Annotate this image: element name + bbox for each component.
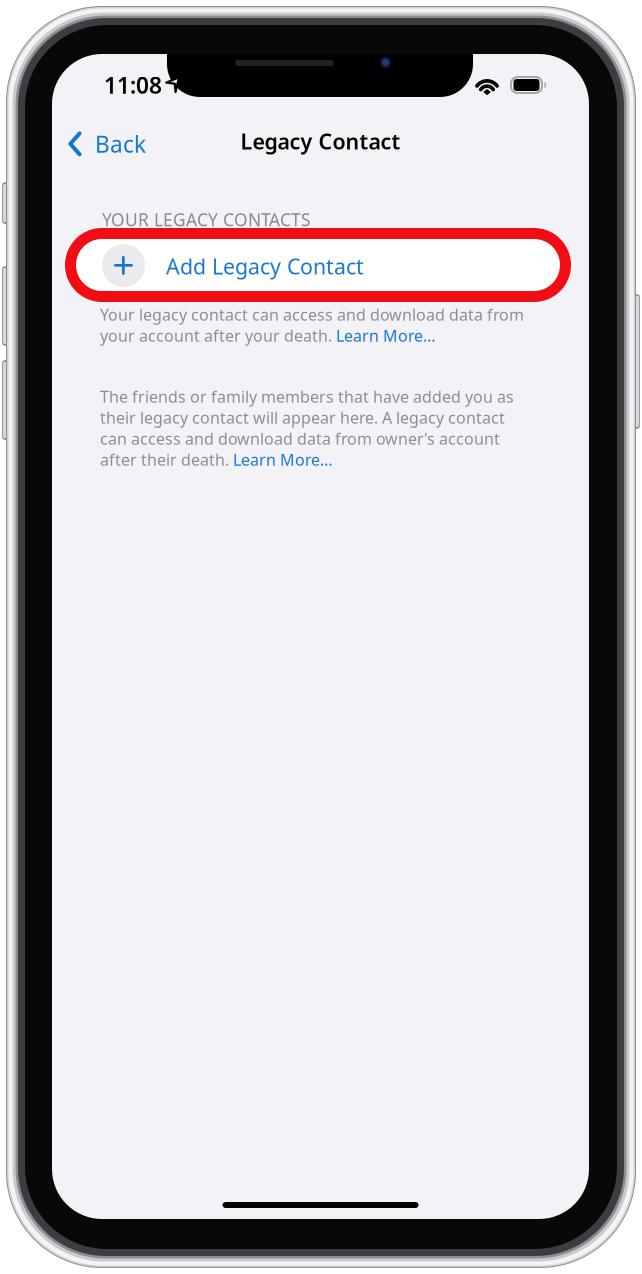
button[interactable]: Add Legacy Contact [74, 238, 567, 291]
staticText: Back [95, 129, 146, 159]
staticText: Your legacy contact can access and downl… [100, 304, 524, 325]
staticText: The friends or family members that have … [100, 386, 514, 407]
staticText: Legacy Contact [240, 127, 400, 155]
staticText: Learn More… [233, 449, 333, 470]
button[interactable]: Learn More… [336, 325, 436, 346]
staticText: 11:08 [104, 70, 162, 100]
staticText: after their death. [100, 449, 233, 470]
staticText: Add Legacy Contact [166, 252, 364, 280]
staticText: YOUR LEGACY CONTACTS [102, 208, 311, 231]
staticText: their legacy contact will appear here. A… [100, 407, 505, 428]
staticText: Learn More… [336, 325, 436, 346]
staticText: can access and download data from owner'… [100, 428, 500, 449]
staticText: your account after your death. [100, 325, 336, 346]
button[interactable]: Back [52, 118, 160, 170]
button[interactable]: Learn More… [233, 449, 333, 470]
